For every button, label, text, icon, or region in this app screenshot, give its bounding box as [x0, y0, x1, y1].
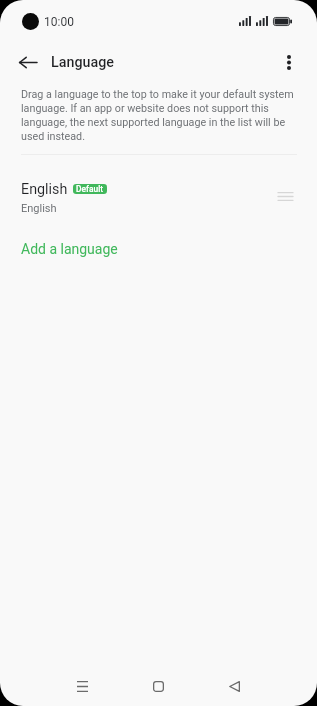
button[interactable]: Back	[212, 664, 256, 706]
button[interactable]: Recent apps	[60, 664, 104, 706]
button[interactable]: More options	[270, 44, 307, 81]
button[interactable]: Navigate up	[9, 44, 46, 81]
staticText: Default	[76, 184, 104, 194]
button[interactable]: English	[0, 170, 317, 226]
staticText: English	[21, 181, 68, 198]
staticText: English	[21, 202, 57, 215]
staticText: Drag a language to the top to make it yo…	[21, 88, 299, 143]
button[interactable]: Reorder	[267, 178, 303, 214]
button[interactable]: Add a language	[0, 230, 317, 268]
staticText: Add a language	[21, 241, 118, 257]
button[interactable]: Home	[136, 664, 180, 706]
staticText: Language	[51, 54, 115, 71]
staticText: 10:00	[44, 15, 74, 29]
